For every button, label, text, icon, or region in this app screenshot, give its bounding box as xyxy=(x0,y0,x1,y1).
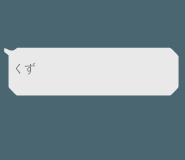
staticText: くず xyxy=(13,61,36,75)
button[interactable]: くず xyxy=(8,47,179,96)
